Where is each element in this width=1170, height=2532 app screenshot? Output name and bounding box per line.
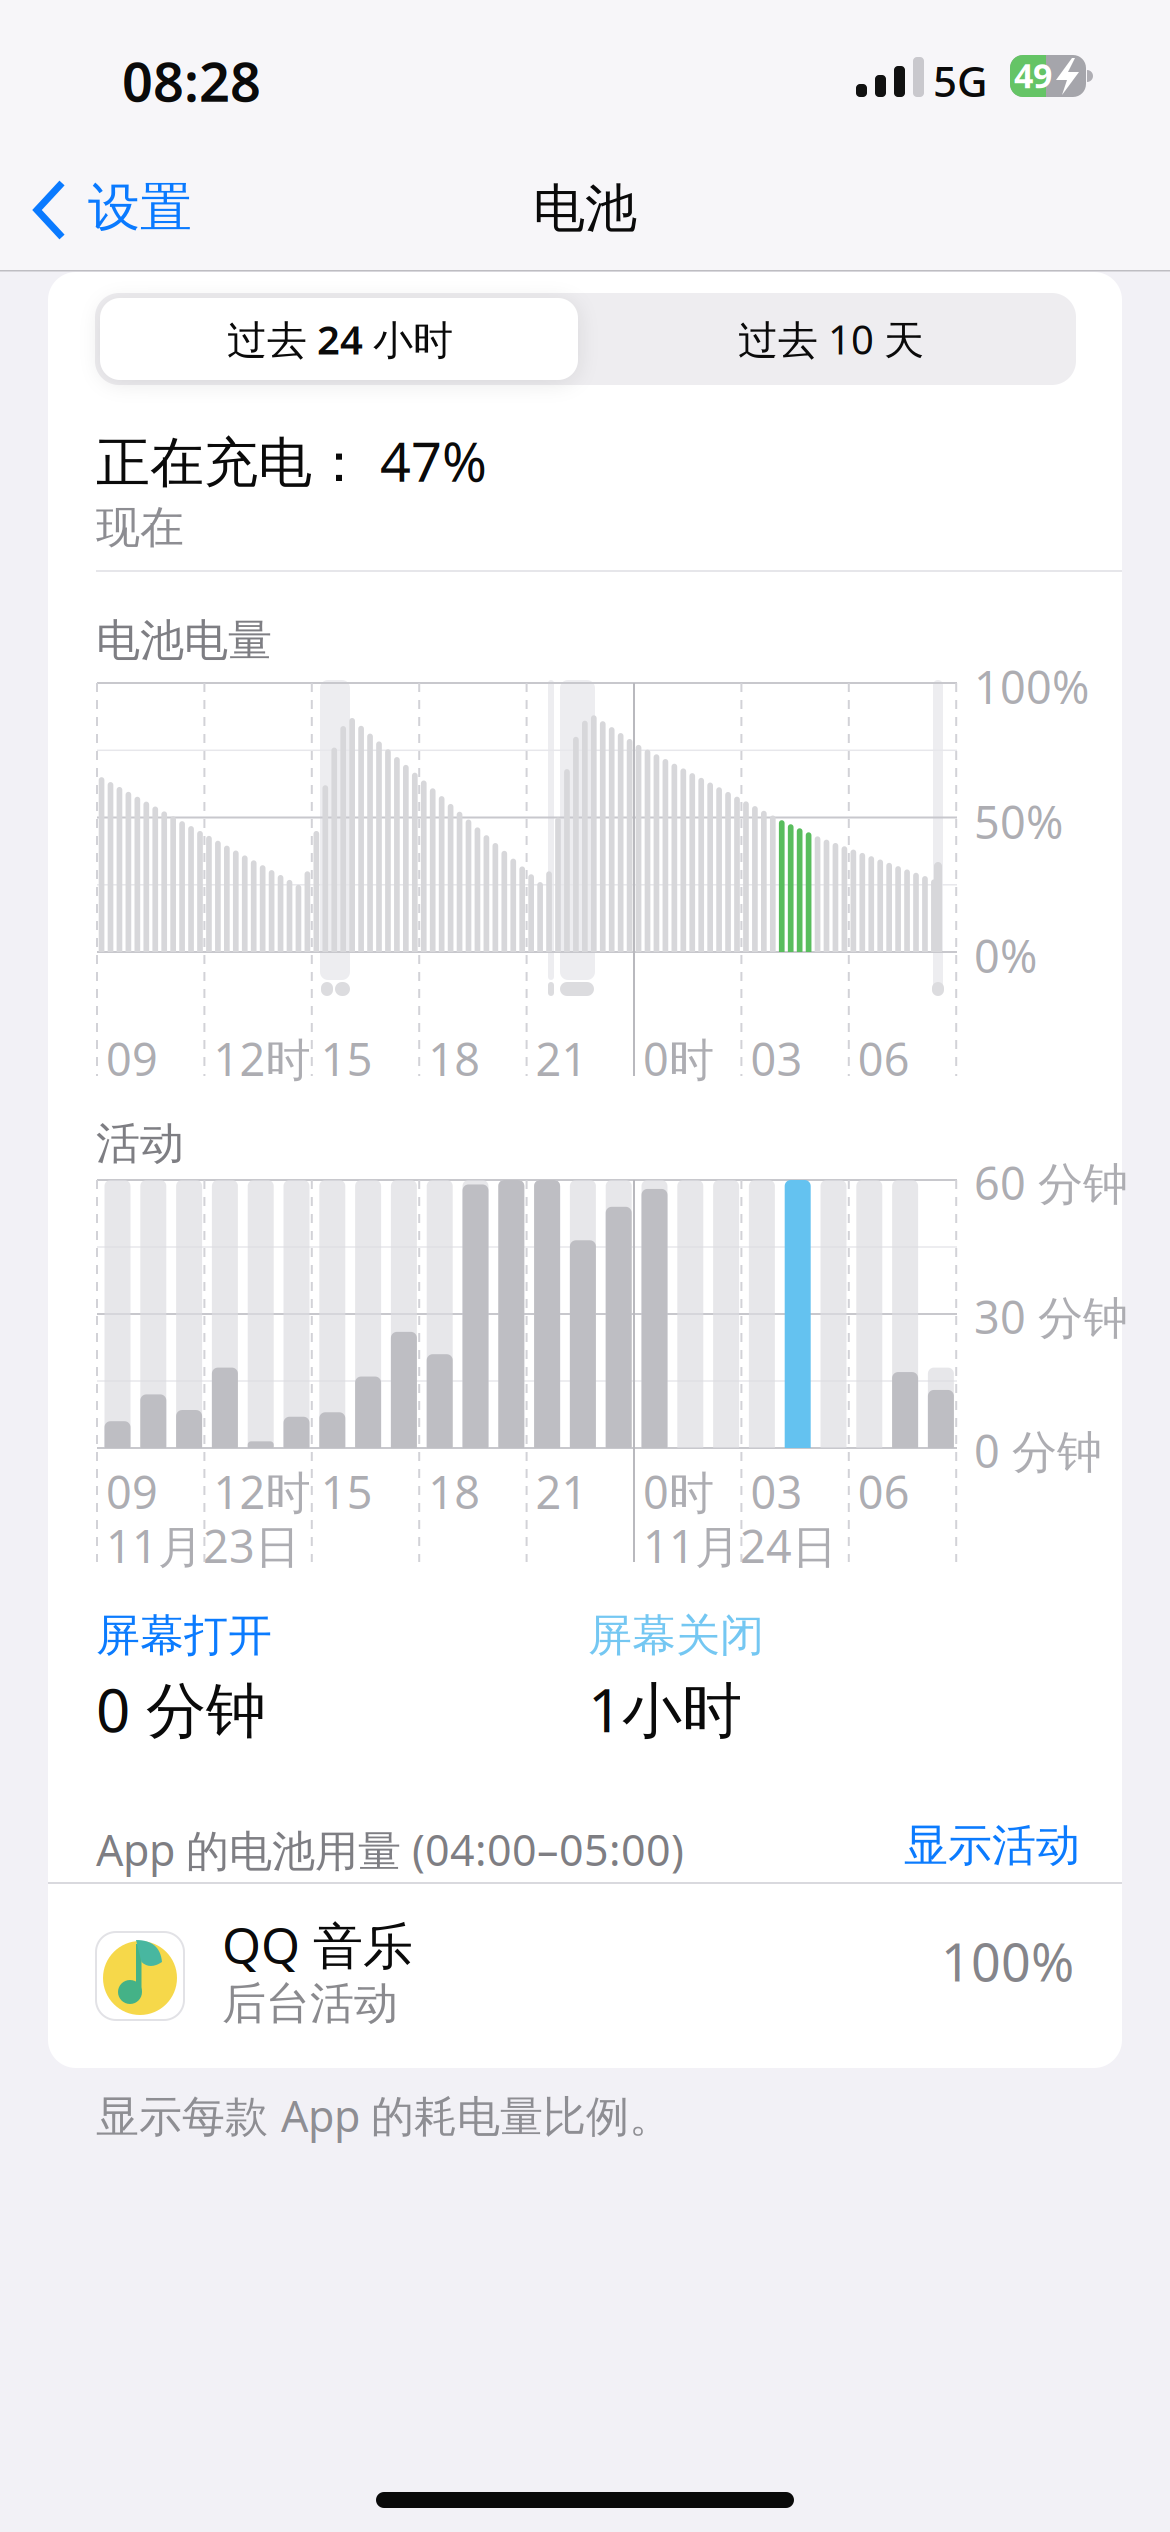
staticText: 50% xyxy=(974,791,1063,852)
staticText: 21 xyxy=(536,1461,588,1522)
staticText: 15 xyxy=(321,1028,373,1089)
staticText: 06 xyxy=(858,1028,910,1089)
staticText: 过去 10 天 xyxy=(738,312,924,366)
staticText: 正在充电： 47% xyxy=(96,424,487,497)
staticText: 11月24日 xyxy=(643,1515,837,1576)
button[interactable]: QQ 音乐 xyxy=(48,1884,1122,2068)
staticText: 06 xyxy=(858,1461,910,1522)
button[interactable]: 过去 10 天 xyxy=(586,293,1076,385)
staticText: 15 xyxy=(321,1461,373,1522)
staticText: 0时 xyxy=(643,1028,714,1089)
staticText: QQ 音乐 xyxy=(222,1910,413,1978)
staticText: 设置 xyxy=(88,175,192,240)
staticText: 09 xyxy=(106,1461,158,1522)
staticText: 21 xyxy=(536,1028,588,1089)
staticText: 后台活动 xyxy=(222,1976,398,2031)
staticText: 显示活动 xyxy=(904,1818,1080,1873)
staticText: 屏幕打开 xyxy=(96,1608,272,1663)
staticText: 屏幕关闭 xyxy=(588,1608,764,1663)
staticText: 12时 xyxy=(213,1028,310,1089)
staticText: 5G xyxy=(933,52,988,109)
staticText: 100% xyxy=(974,656,1089,717)
staticText: 0 分钟 xyxy=(96,1668,266,1750)
staticText: 08:28 xyxy=(122,44,261,117)
staticText: App 的电池用量 (04:00–05:00) xyxy=(96,1820,684,1879)
staticText: 0% xyxy=(974,925,1037,986)
staticText: 03 xyxy=(750,1028,802,1089)
staticText: 03 xyxy=(750,1461,802,1522)
staticText: 12时 xyxy=(213,1461,310,1522)
staticText: 30 分钟 xyxy=(974,1286,1128,1347)
staticText: 1小时 xyxy=(588,1668,742,1750)
staticText: 0时 xyxy=(643,1461,714,1522)
staticText: 18 xyxy=(428,1028,480,1089)
button[interactable]: 过去 24 小时 xyxy=(95,293,585,385)
staticText: 0 分钟 xyxy=(974,1420,1102,1481)
staticText: 18 xyxy=(428,1461,480,1522)
button[interactable]: 返回设置 xyxy=(16,166,306,252)
staticText: 电池电量 xyxy=(96,613,272,668)
staticText: 过去 24 小时 xyxy=(227,312,453,366)
staticText: 100% xyxy=(941,1926,1074,1997)
staticText: 活动 xyxy=(96,1116,184,1171)
button[interactable]: 显示活动 xyxy=(0,1818,1080,1873)
staticText: 09 xyxy=(106,1028,158,1089)
staticText: 49 xyxy=(1014,52,1052,98)
staticText: 电池 xyxy=(533,176,637,241)
staticText: 11月23日 xyxy=(106,1515,300,1576)
staticText: 现在 xyxy=(96,500,184,555)
staticText: 60 分钟 xyxy=(974,1152,1128,1213)
staticText: 显示每款 App 的耗电量比例。 xyxy=(96,2086,672,2145)
